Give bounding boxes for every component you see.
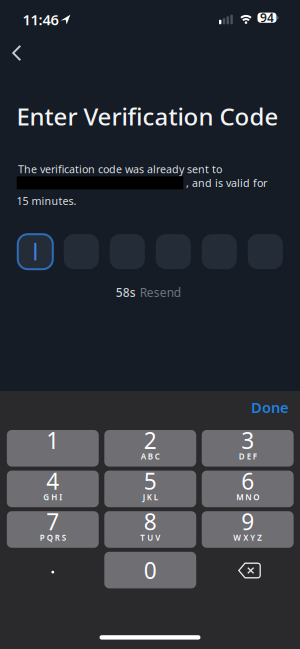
staticText: 3 (241, 425, 254, 455)
button[interactable]: Verification code digit 3 (110, 234, 145, 269)
staticText: 7 (46, 506, 59, 536)
staticText: 4 (46, 466, 59, 496)
button[interactable]: 2 (104, 430, 196, 467)
staticText: 15 minutes. (16, 194, 76, 208)
button[interactable]: 8 (104, 511, 196, 548)
staticText: 8 (144, 506, 157, 536)
button[interactable]: 1 (7, 430, 99, 467)
staticText: The verification code was already sent t… (18, 162, 222, 176)
button[interactable]: 0 (104, 552, 196, 588)
staticText: A B C (141, 451, 160, 462)
staticText: J K L (143, 492, 158, 502)
staticText: 94 (260, 10, 274, 26)
staticText: 1 (46, 425, 59, 455)
staticText: 9 (241, 506, 254, 536)
staticText: 0 (144, 555, 157, 585)
button[interactable]: Verification code digit 1 (18, 234, 53, 269)
staticText: 5 (144, 466, 157, 496)
button[interactable]: Verification code digit 2 (64, 234, 99, 269)
button[interactable]: Verification code digit 4 (156, 234, 191, 269)
staticText: , and is valid for (186, 176, 267, 190)
button[interactable]: 9 (202, 511, 294, 548)
button[interactable]: 5 (104, 471, 196, 507)
button[interactable]: Back (0, 36, 34, 70)
button[interactable]: 7 (7, 511, 99, 548)
staticText: T U V (140, 532, 160, 543)
button[interactable]: Decimal point (7, 552, 99, 588)
staticText: Resend (140, 284, 181, 300)
button[interactable]: 3 (202, 430, 294, 467)
staticText: W X Y Z (233, 532, 262, 543)
button[interactable]: Verification code digit 5 (202, 234, 237, 269)
staticText: Enter Verification Code (16, 100, 278, 132)
staticText: P Q R S (40, 532, 66, 543)
staticText: 6 (241, 466, 254, 496)
button[interactable]: Delete (202, 552, 294, 588)
staticText: D E F (239, 451, 257, 462)
button[interactable]: Resend (140, 284, 181, 300)
staticText: 2 (144, 425, 157, 455)
staticText: M N O (236, 492, 259, 502)
button[interactable]: 4 (7, 471, 99, 507)
staticText: 11:46 (22, 10, 58, 29)
staticText: 58s (116, 284, 136, 300)
button[interactable]: Done (229, 396, 289, 418)
button[interactable]: Verification code digit 6 (248, 234, 283, 269)
button[interactable]: 6 (202, 471, 294, 507)
staticText: Done (251, 398, 289, 417)
staticText: G H I (43, 492, 62, 502)
